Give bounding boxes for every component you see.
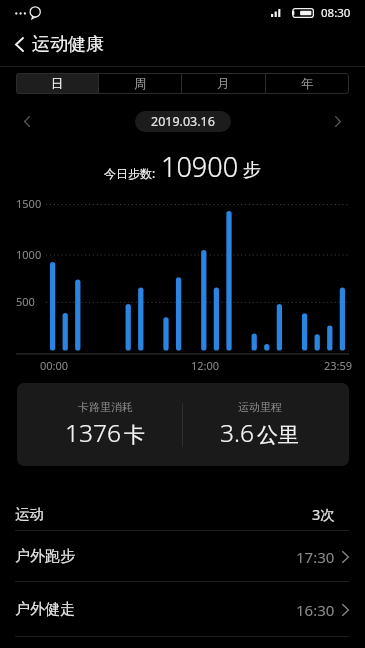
staticText: 08:30	[321, 5, 351, 21]
button[interactable]: 卡路里消耗	[28, 383, 182, 466]
staticText: 10900	[161, 148, 239, 185]
staticText: 16:30	[296, 600, 335, 620]
staticText: 12:00	[191, 358, 220, 373]
staticText: 1000	[16, 247, 42, 262]
staticText: 3.6	[220, 416, 254, 449]
button[interactable]: 户外跑步	[0, 531, 365, 582]
staticText: 00:00	[40, 358, 69, 373]
staticText: 运动	[15, 505, 44, 523]
staticText: 17:30	[296, 547, 335, 567]
button[interactable]: 户外健走	[0, 584, 365, 635]
staticText: 500	[16, 294, 35, 309]
staticText: 2019.03.16	[151, 113, 215, 130]
button[interactable]: Previous day	[17, 110, 37, 132]
staticText: 1500	[16, 196, 42, 211]
staticText: 今日步数:	[104, 165, 156, 181]
staticText: 户外健走	[15, 600, 75, 619]
staticText: 卡	[124, 422, 145, 448]
staticText: 23:59	[324, 358, 353, 373]
staticText: 周	[134, 76, 147, 92]
staticText: 日	[51, 76, 64, 92]
staticText: 步	[243, 159, 261, 182]
button[interactable]: 月	[182, 73, 265, 94]
staticText: 3次	[312, 504, 335, 524]
staticText: 卡路里消耗	[78, 400, 133, 414]
staticText: 运动里程	[238, 400, 282, 414]
button[interactable]: Back	[7, 32, 31, 56]
button[interactable]: Next day	[328, 110, 348, 132]
staticText: 年	[301, 76, 314, 92]
button[interactable]: 年	[266, 73, 349, 94]
button[interactable]: 运动里程	[183, 383, 336, 466]
staticText: 公里	[257, 422, 299, 448]
staticText: 月	[217, 76, 230, 92]
staticText: 1376	[65, 416, 121, 449]
button[interactable]: 周	[99, 73, 181, 94]
button[interactable]: 日	[16, 73, 98, 94]
staticText: 运动健康	[32, 33, 104, 56]
button[interactable]: 2019.03.16	[135, 111, 231, 132]
staticText: 户外跑步	[15, 547, 75, 566]
